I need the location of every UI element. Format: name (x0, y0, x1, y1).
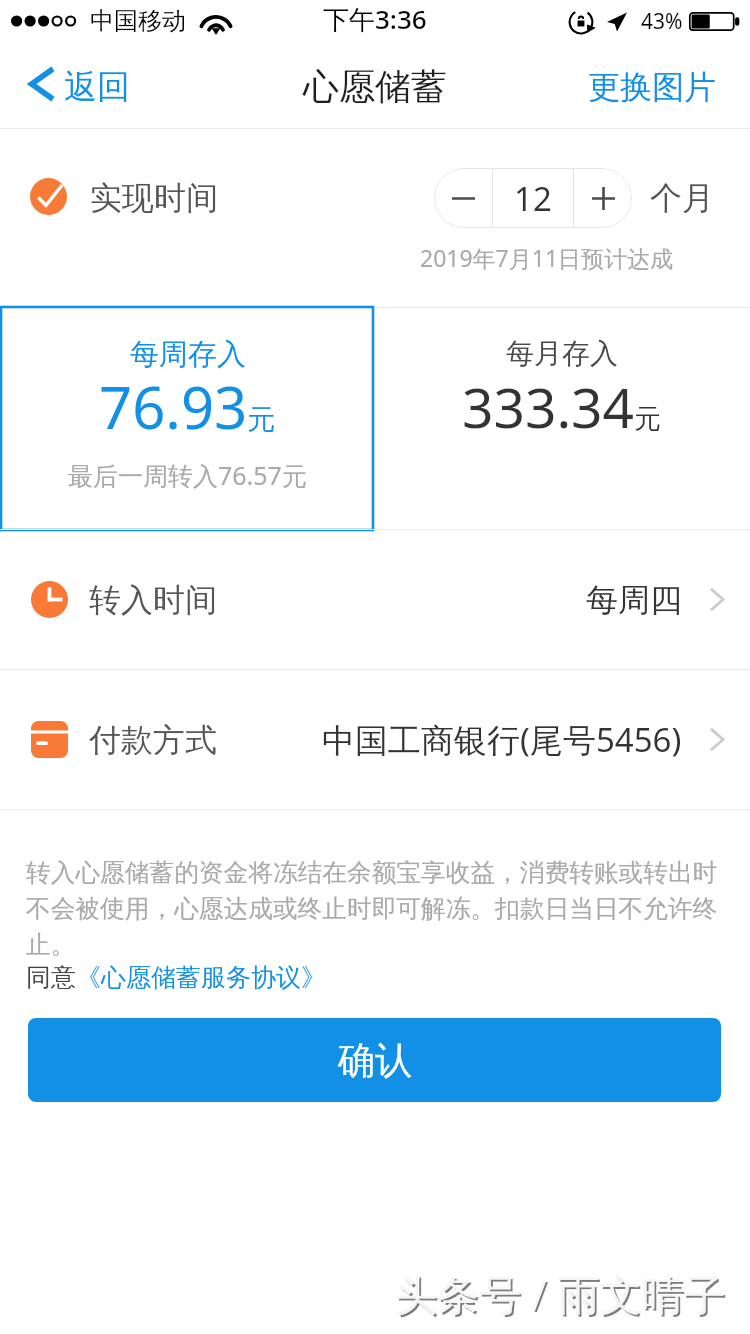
button[interactable]: 同意《心愿储蓄服务协议》 (26, 962, 326, 993)
staticText: 返回 (64, 66, 130, 108)
staticText: 同意《心愿储蓄服务协议》 (26, 962, 326, 993)
staticText: 最后一周转入76.57元 (68, 458, 307, 492)
staticText: 12 (514, 176, 552, 221)
staticText: 76.93元 (99, 367, 276, 446)
staticText: 实现时间 (90, 178, 218, 218)
staticText: 个月 (650, 178, 714, 218)
button[interactable]: 返回 (0, 60, 146, 118)
button[interactable]: 付款方式 (0, 670, 750, 809)
staticText: 头条号 / 雨文晴子 (397, 1267, 728, 1324)
staticText: 每周四 (586, 580, 682, 620)
button[interactable]: 每月存入 (374, 308, 750, 529)
button[interactable]: Increase months (574, 168, 632, 228)
staticText: 下午3:36 (323, 1, 427, 37)
staticText: 付款方式 (89, 720, 217, 760)
button[interactable]: 确认 (28, 1018, 721, 1102)
staticText: 头条号 / 雨文晴子 (395, 1265, 726, 1322)
staticText: 43% (641, 7, 683, 36)
staticText: 更换图片 (588, 67, 716, 107)
button[interactable]: 转入时间 (0, 530, 750, 669)
staticText: 中国工商银行(尾号5456) (322, 717, 682, 762)
staticText: 中国移动 (90, 6, 186, 36)
staticText: 每月存入 (506, 336, 618, 371)
staticText: 转入心愿储蓄的资金将冻结在余额宝享收益，消费转账或转出时不会被使用，心愿达成或终… (26, 857, 730, 960)
staticText: 333.34元 (462, 369, 662, 444)
button[interactable]: 更换图片 (572, 61, 750, 117)
staticText: 2019年7月11日预计达成 (420, 242, 674, 273)
staticText: 心愿储蓄 (303, 64, 447, 109)
staticText: 确认 (338, 1037, 412, 1084)
staticText: 每周存入 (130, 336, 246, 373)
staticText: 转入时间 (89, 580, 217, 620)
button[interactable]: Decrease months (434, 168, 492, 228)
button[interactable]: 每周存入 (0, 308, 374, 529)
